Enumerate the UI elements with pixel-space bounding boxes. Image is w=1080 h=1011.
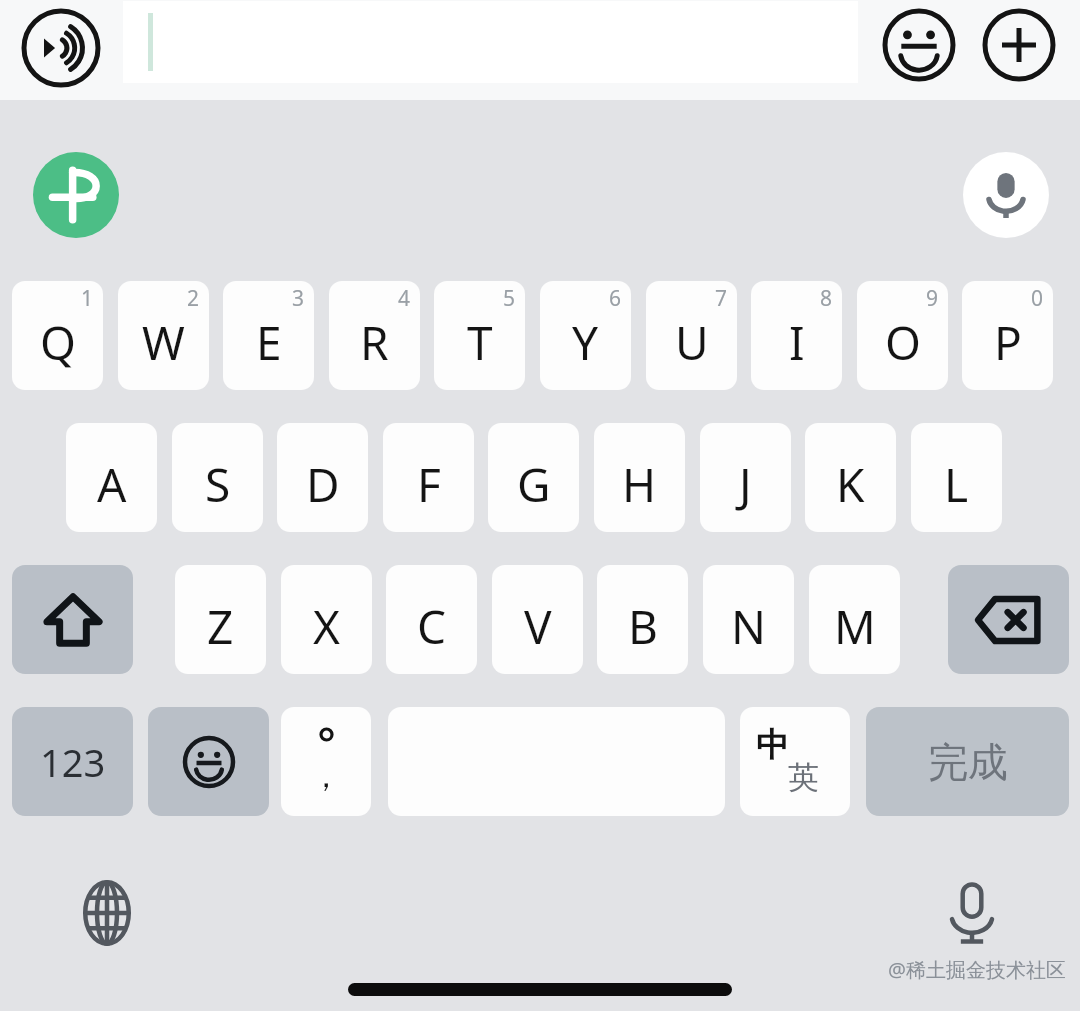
button[interactable]: B <box>597 565 688 674</box>
staticText: U <box>675 311 709 374</box>
button[interactable]: 8 <box>751 281 842 390</box>
button[interactable]: 5 <box>434 281 525 390</box>
button[interactable]: 123 <box>12 707 133 816</box>
button[interactable]: M <box>809 565 900 674</box>
staticText: 5 <box>503 284 516 313</box>
staticText: A <box>97 453 127 516</box>
staticText: 英 <box>788 758 819 797</box>
staticText: 7 <box>715 284 728 313</box>
staticText: 1 <box>81 284 94 313</box>
button[interactable]: ， <box>281 707 371 816</box>
staticText: 123 <box>40 736 106 788</box>
button[interactable]: C <box>386 565 477 674</box>
staticText: Y <box>572 311 599 374</box>
button[interactable]: 4 <box>329 281 420 390</box>
button[interactable]: Chinese English toggle <box>740 707 850 816</box>
button[interactable]: A <box>66 423 157 532</box>
button[interactable]: J <box>700 423 791 532</box>
button[interactable]: L <box>911 423 1002 532</box>
staticText: W <box>142 311 185 374</box>
button[interactable]: S <box>172 423 263 532</box>
button[interactable]: Emoji keyboard <box>148 707 269 816</box>
button[interactable]: G <box>488 423 579 532</box>
button[interactable]: F <box>383 423 474 532</box>
button[interactable]: 1 <box>12 281 103 390</box>
staticText: ， <box>310 756 342 796</box>
button[interactable]: N <box>703 565 794 674</box>
button[interactable]: 0 <box>962 281 1053 390</box>
staticText: K <box>836 453 865 516</box>
button[interactable]: D <box>277 423 368 532</box>
button[interactable]: 6 <box>540 281 631 390</box>
staticText: E <box>256 311 282 374</box>
button[interactable]: Input method <box>33 152 119 238</box>
staticText: 9 <box>926 284 939 313</box>
button[interactable]: X <box>281 565 372 674</box>
button[interactable]: Backspace <box>948 565 1069 674</box>
button[interactable]: Z <box>175 565 266 674</box>
staticText: O <box>885 311 921 374</box>
staticText: 4 <box>398 284 411 313</box>
staticText: 2 <box>187 284 200 313</box>
staticText: Q <box>40 311 76 374</box>
button[interactable]: Add <box>978 4 1060 86</box>
staticText: B <box>628 595 658 658</box>
button[interactable]: H <box>594 423 685 532</box>
staticText: H <box>622 453 657 516</box>
staticText: X <box>313 595 340 658</box>
button[interactable]: Voice input <box>925 866 1019 960</box>
staticText: Z <box>207 595 234 658</box>
staticText: V <box>524 595 552 658</box>
button[interactable]: K <box>805 423 896 532</box>
button[interactable]: Change keyboard <box>60 866 154 960</box>
staticText: 8 <box>820 284 833 313</box>
staticText: R <box>360 311 389 374</box>
staticText: S <box>205 453 231 516</box>
staticText: G <box>517 453 551 516</box>
staticText: D <box>306 453 340 516</box>
button[interactable]: 9 <box>857 281 948 390</box>
button[interactable]: Voice message <box>17 4 105 92</box>
staticText: L <box>944 453 969 516</box>
button[interactable]: Voice input <box>963 152 1049 238</box>
button[interactable]: Emoji <box>878 4 960 86</box>
staticText: J <box>739 453 752 516</box>
staticText: P <box>994 311 1022 374</box>
staticText: T <box>467 311 493 374</box>
button[interactable]: 完成 <box>866 707 1069 816</box>
button[interactable]: 7 <box>646 281 737 390</box>
button[interactable]: V <box>492 565 583 674</box>
staticText: 中 <box>756 724 789 766</box>
staticText: F <box>417 453 441 516</box>
button[interactable]: 2 <box>118 281 209 390</box>
button[interactable]: 3 <box>223 281 314 390</box>
staticText: @稀土掘金技术社区 <box>888 956 1066 983</box>
staticText: 完成 <box>928 737 1008 787</box>
button[interactable]: Shift <box>12 565 133 674</box>
staticText: 6 <box>609 284 622 313</box>
staticText: M <box>834 595 876 658</box>
staticText: 0 <box>1031 284 1044 313</box>
staticText: C <box>417 595 447 658</box>
staticText: N <box>731 595 766 658</box>
staticText: I <box>789 311 805 374</box>
button[interactable] <box>123 1 858 83</box>
staticText: 3 <box>292 284 305 313</box>
